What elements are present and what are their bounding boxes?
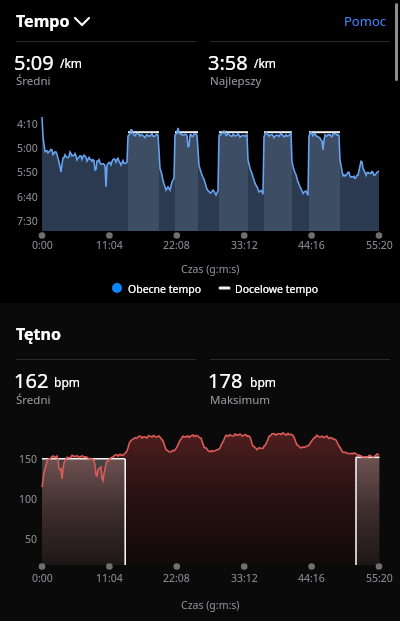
staticText: 100 (19, 492, 38, 506)
staticText: 33:12 (231, 571, 258, 585)
staticText: Średni (16, 73, 51, 89)
staticText: Najlepszy (210, 73, 262, 89)
staticText: /km (254, 55, 277, 71)
button[interactable]: Pomoc (330, 8, 386, 34)
staticText: 11:04 (96, 571, 123, 585)
staticText: bpm (250, 374, 276, 390)
staticText: Docelowe tempo (235, 282, 319, 296)
staticText: 22:08 (163, 571, 190, 585)
staticText: 6:40 (17, 190, 38, 204)
staticText: 150 (19, 452, 38, 466)
staticText: 178 (208, 367, 243, 394)
staticText: Czas (g:m:s) (181, 262, 240, 276)
staticText: 33:12 (231, 238, 258, 252)
staticText: 7:30 (17, 214, 38, 228)
staticText: 50 (25, 532, 38, 546)
button[interactable]: Tempo (16, 8, 92, 34)
staticText: 162 (14, 367, 49, 394)
staticText: Czas (g:m:s) (181, 598, 240, 612)
staticText: Tempo (16, 10, 70, 32)
staticText: 3:58 (208, 49, 248, 76)
staticText: Pomoc (344, 12, 386, 30)
staticText: 22:08 (163, 238, 190, 252)
staticText: 5:00 (17, 141, 38, 155)
staticText: 55:20 (366, 238, 393, 252)
staticText: 11:04 (96, 238, 123, 252)
staticText: Tętno (16, 323, 61, 345)
staticText: 0:00 (32, 571, 53, 585)
staticText: /km (60, 55, 83, 71)
staticText: 4:10 (17, 117, 38, 131)
staticText: Maksimum (210, 392, 271, 408)
staticText: 5:50 (17, 165, 38, 179)
staticText: 0:00 (32, 238, 53, 252)
staticText: 44:16 (298, 571, 325, 585)
staticText: Obecne tempo (128, 282, 202, 296)
staticText: 55:20 (366, 571, 393, 585)
staticText: 5:09 (14, 49, 54, 76)
staticText: Średni (16, 392, 51, 408)
staticText: bpm (54, 374, 80, 390)
staticText: 44:16 (298, 238, 325, 252)
